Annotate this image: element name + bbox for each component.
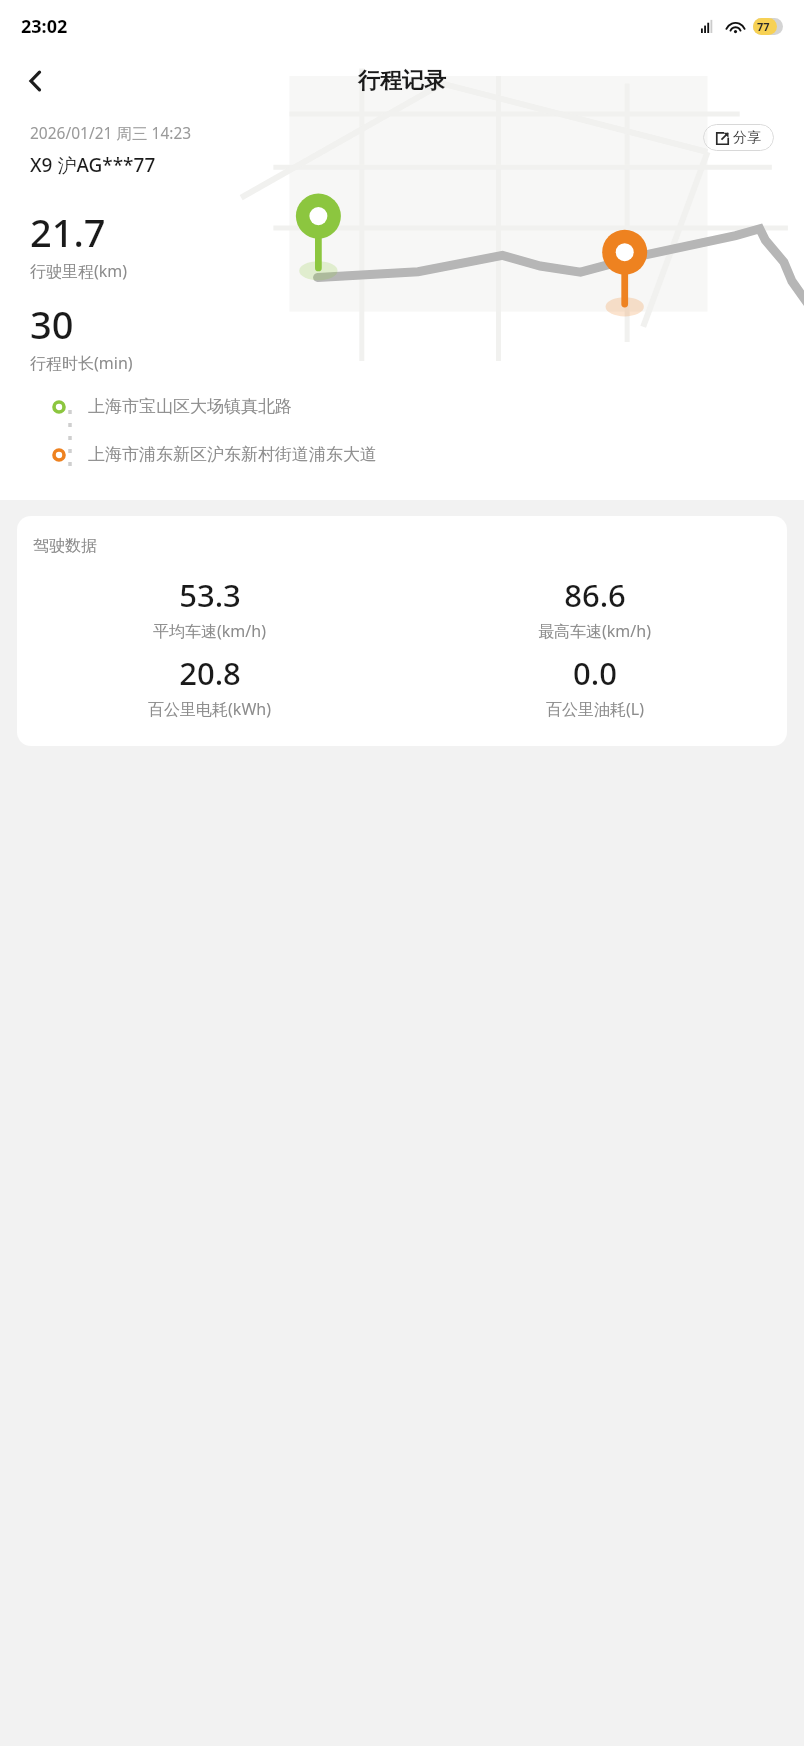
staticText: 平均车速(km/h): [153, 620, 266, 642]
button[interactable]: 驾驶数据: [17, 516, 787, 746]
staticText: 行程记录: [358, 67, 446, 95]
staticText: 分享: [733, 129, 761, 147]
button[interactable]: 分享: [703, 124, 774, 151]
staticText: 77: [757, 19, 770, 34]
staticText: 0.0: [573, 652, 617, 694]
staticText: 23:02: [21, 14, 68, 39]
staticText: 百公里油耗(L): [546, 698, 644, 720]
staticText: 2026/01/21 周三 14:23: [30, 122, 192, 143]
button[interactable]: 返回: [10, 55, 62, 107]
staticText: 百公里电耗(kWh): [148, 698, 271, 720]
staticText: 21.7: [30, 206, 106, 258]
staticText: 53.3: [179, 574, 241, 616]
staticText: 行驶里程(km): [30, 260, 128, 282]
staticText: X9 沪AG***77: [30, 152, 156, 178]
staticText: 30: [30, 298, 74, 350]
staticText: 86.6: [564, 574, 626, 616]
staticText: 最高车速(km/h): [538, 620, 651, 642]
staticText: 20.8: [179, 652, 241, 694]
staticText: 行程时长(min): [30, 352, 133, 374]
staticText: 驾驶数据: [33, 536, 97, 556]
staticText: 上海市宝山区大场镇真北路: [88, 396, 292, 417]
staticText: 上海市浦东新区沪东新村街道浦东大道: [88, 444, 377, 465]
